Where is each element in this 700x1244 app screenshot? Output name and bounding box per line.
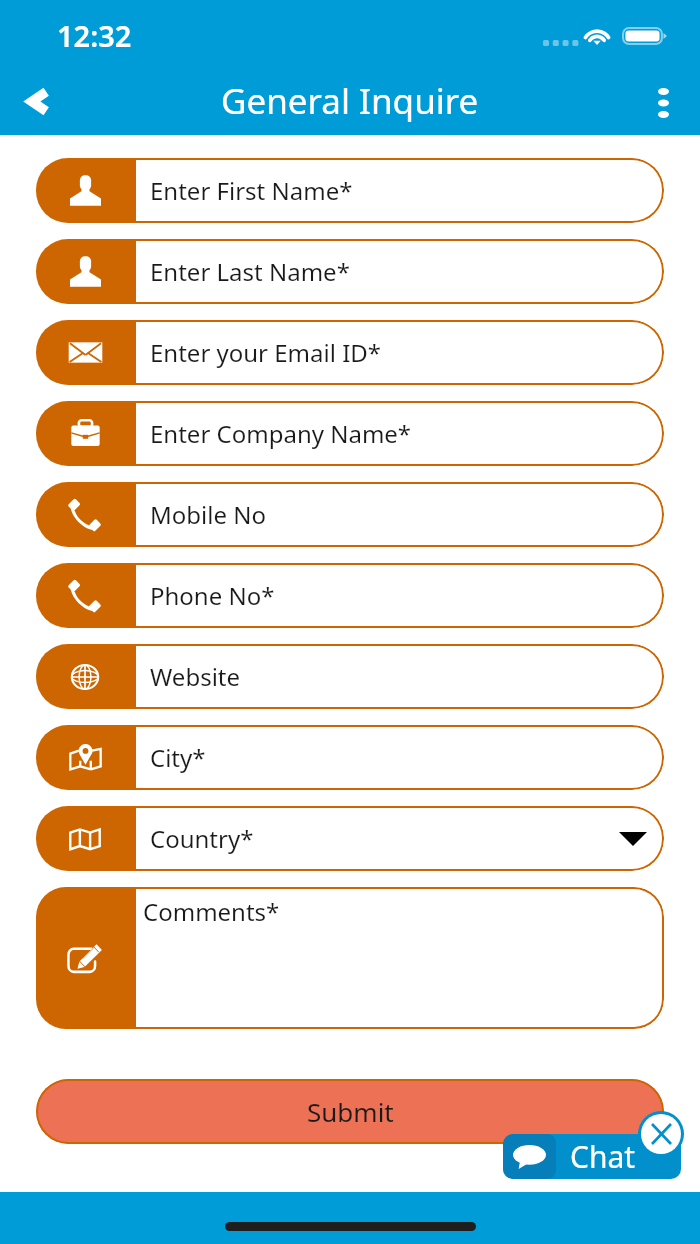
button[interactable]: Back [0,68,52,135]
button[interactable]: Phone No* [36,563,664,628]
button[interactable]: Enter Company Name* [36,401,664,466]
staticText: Enter Last Name* [150,255,350,288]
staticText: Enter your Email ID* [150,336,382,369]
staticText: Phone No* [150,579,275,612]
staticText: Comments* [143,895,280,928]
staticText: Enter Company Name* [150,417,412,450]
button[interactable]: Website [36,644,664,709]
button[interactable]: Submit [36,1079,664,1144]
staticText: Country* [150,822,254,855]
button[interactable]: Enter First Name* [36,158,664,223]
staticText: General Inquire [221,77,479,125]
button[interactable]: Enter Last Name* [36,239,664,304]
staticText: 12:32 [57,16,132,55]
staticText: City* [150,741,206,774]
button[interactable]: Chat [503,1134,681,1179]
button[interactable]: More options [638,68,700,135]
staticText: Submit [307,1094,394,1129]
staticText: Enter First Name* [150,174,353,207]
staticText: Website [150,660,241,693]
button[interactable]: City* [36,725,664,790]
button[interactable]: Country* [36,806,664,871]
button[interactable]: Enter your Email ID* [36,320,664,385]
staticText: Mobile No [150,498,266,531]
staticText: Chat [570,1136,636,1177]
button[interactable]: Close chat [641,1114,681,1154]
button[interactable]: Comments* [36,887,664,1029]
button[interactable]: Mobile No [36,482,664,547]
